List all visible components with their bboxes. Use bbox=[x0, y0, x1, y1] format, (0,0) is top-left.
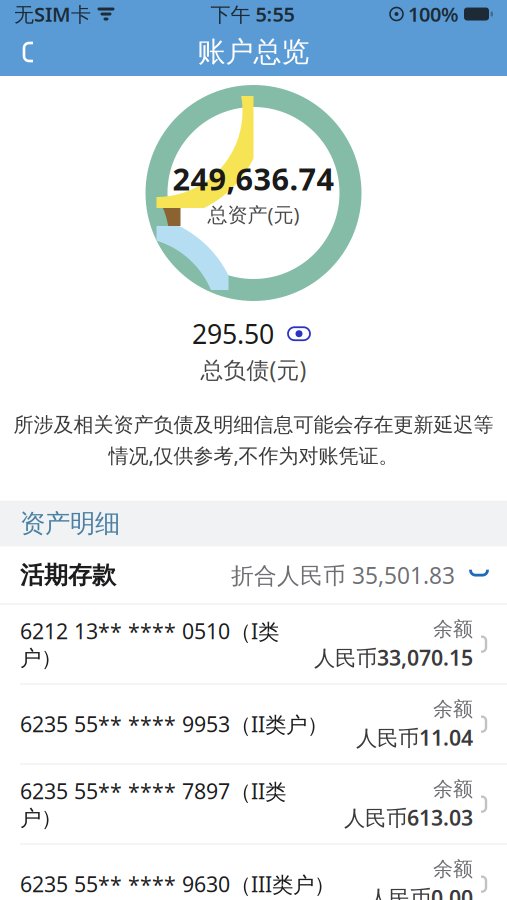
staticText: 295.50 bbox=[192, 316, 274, 351]
button[interactable]: 6212 13** **** 0510（I类户） bbox=[0, 605, 507, 684]
staticText: 无SIM卡 bbox=[14, 1, 91, 27]
staticText: 余额 bbox=[433, 617, 473, 641]
staticText: 100% bbox=[408, 1, 459, 27]
staticText: 余额 bbox=[433, 697, 473, 721]
staticText: 情况,仅供参考,不作为对账凭证。 bbox=[108, 442, 398, 469]
staticText: 人民币33,070.15 bbox=[314, 643, 473, 672]
staticText: 资产明细 bbox=[20, 508, 120, 539]
button[interactable]: 6235 55** **** 9630（III类户） bbox=[0, 845, 507, 900]
staticText: 总负债(元) bbox=[200, 354, 306, 384]
staticText: 下午 5:55 bbox=[210, 1, 294, 27]
button[interactable]: 6235 55** **** 9953（II类户） bbox=[0, 685, 507, 764]
staticText: 249,636.74 bbox=[172, 158, 334, 199]
staticText: 折合人民币 35,501.83 bbox=[231, 560, 455, 590]
staticText: 6235 55** **** 7897（II类户） bbox=[20, 777, 286, 831]
staticText: 6235 55** **** 9953（II类户） bbox=[20, 710, 328, 738]
staticText: 总资产(元) bbox=[207, 201, 299, 228]
staticText: 6212 13** **** 0510（I类户） bbox=[20, 617, 279, 671]
staticText: 6235 55** **** 9630（III类户） bbox=[20, 870, 335, 898]
staticText: 余额 bbox=[433, 777, 473, 801]
staticText: 活期存款 bbox=[20, 560, 116, 590]
button[interactable]: 活期存款 bbox=[0, 547, 507, 604]
staticText: 账户总览 bbox=[197, 35, 309, 69]
staticText: 人民币11.04 bbox=[356, 723, 473, 752]
staticText: 余额 bbox=[433, 857, 473, 881]
button[interactable]: 显示或隐藏总负债 bbox=[283, 321, 315, 347]
staticText: 人民币613.03 bbox=[344, 803, 473, 832]
staticText: 人民币0.00 bbox=[368, 883, 473, 900]
button[interactable]: 6235 55** **** 7897（II类户） bbox=[0, 765, 507, 844]
staticText: 所涉及相关资产负债及明细信息可能会存在更新延迟等 bbox=[13, 412, 493, 437]
button[interactable]: 返回 bbox=[0, 28, 47, 76]
